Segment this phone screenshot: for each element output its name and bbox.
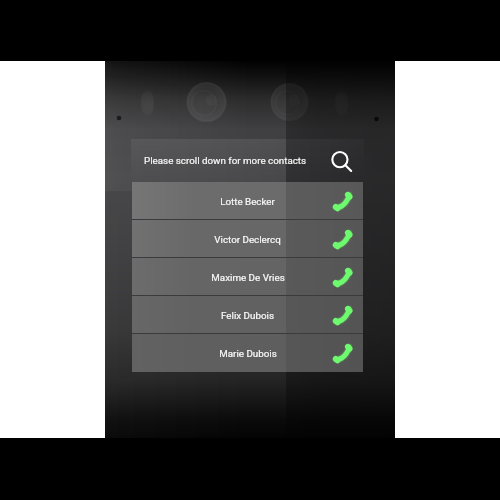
other: Search — [330, 150, 354, 174]
button[interactable]: Lotte Becker — [132, 182, 363, 220]
button[interactable]: Maxime De Vries — [132, 258, 363, 296]
button[interactable]: Marie Dubois — [132, 334, 363, 372]
button[interactable]: Please scroll down for more contacts — [131, 139, 364, 182]
staticText: Lotte Becker — [220, 196, 275, 207]
staticText: Please scroll down for more contacts — [144, 155, 307, 166]
button[interactable]: Felix Dubois — [132, 296, 363, 334]
staticText: Felix Dubois — [221, 310, 274, 321]
staticText: Marie Dubois — [219, 348, 277, 359]
staticText: Victor Declercq — [214, 234, 281, 245]
button[interactable]: Victor Declercq — [132, 220, 363, 258]
staticText: Maxime De Vries — [211, 272, 285, 283]
